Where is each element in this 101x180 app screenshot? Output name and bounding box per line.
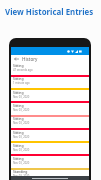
staticText: Sitting: [13, 90, 24, 95]
button[interactable]: Sitting: [11, 76, 89, 89]
button[interactable]: Sitting: [11, 143, 89, 156]
staticText: Sitting: [13, 116, 24, 121]
staticText: History: [22, 56, 38, 62]
staticText: Sitting: [13, 103, 24, 108]
staticText: Nov 03, 2020: [13, 108, 30, 112]
button[interactable]: Sitting: [11, 90, 89, 103]
button[interactable]: Sitting: [11, 156, 89, 169]
staticText: Sitting: [13, 130, 24, 135]
staticText: Sitting: [13, 156, 24, 161]
staticText: Nov 03, 2020: [13, 174, 30, 178]
staticText: Nov 03, 2020: [13, 135, 30, 139]
staticText: Sitting: [13, 143, 24, 148]
staticText: 1 minute ago: [13, 81, 30, 85]
button[interactable]: Standing: [11, 169, 89, 180]
staticText: 47 seconds ago: [13, 68, 33, 72]
staticText: View Historical Entries: [5, 7, 94, 18]
button[interactable]: Back: [11, 55, 22, 62]
button[interactable]: Sitting: [11, 63, 89, 76]
staticText: Sitting: [13, 63, 24, 68]
staticText: Nov 03, 2020: [13, 148, 30, 152]
staticText: Nov 03, 2020: [13, 121, 30, 125]
staticText: Nov 03, 2020: [13, 161, 30, 165]
button[interactable]: Sitting: [11, 130, 89, 143]
staticText: Sitting: [13, 76, 24, 81]
staticText: Standing: [13, 169, 28, 174]
staticText: Nov 03, 2020: [13, 95, 30, 99]
button[interactable]: Sitting: [11, 103, 89, 116]
button[interactable]: Sitting: [11, 116, 89, 129]
